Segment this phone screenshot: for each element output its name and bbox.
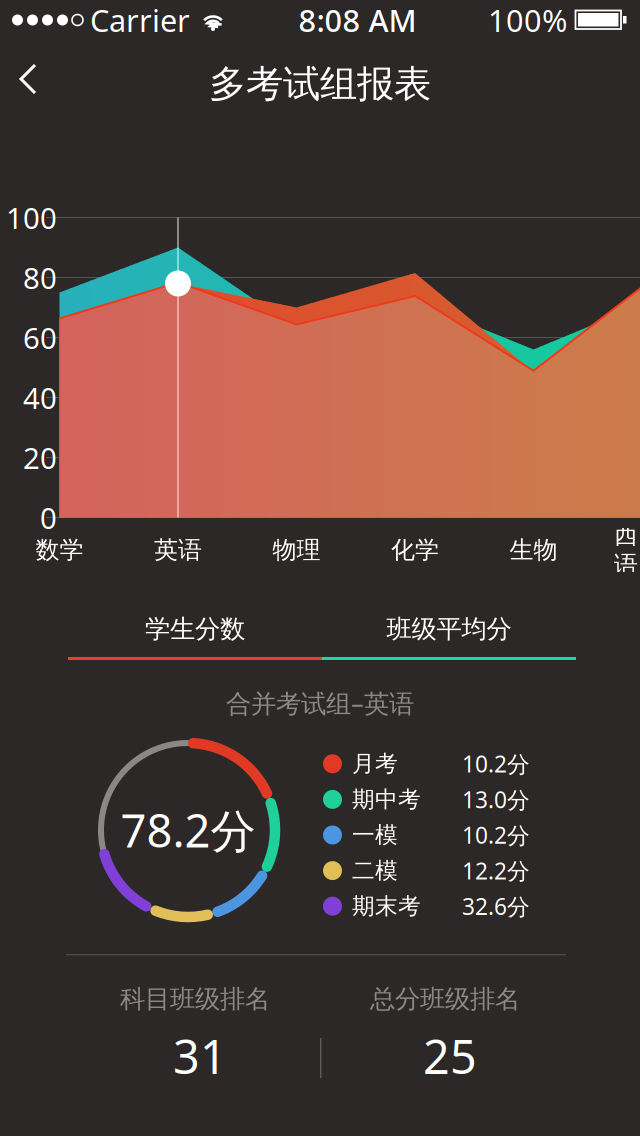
button[interactable]: 总分班级排名 — [320, 966, 570, 1086]
staticText: 物理 — [272, 535, 320, 565]
staticText: 化学 — [391, 535, 439, 565]
staticText: 78.2分 — [120, 800, 255, 860]
staticText: 期末考 — [352, 892, 421, 920]
staticText: 32.6分 — [462, 891, 530, 921]
button[interactable]: 返回 — [8, 53, 60, 105]
staticText: 12.2分 — [462, 855, 530, 886]
staticText: 8:08 AM — [298, 0, 416, 40]
staticText: 班级平均分 — [386, 613, 511, 644]
staticText: 合并考试组–英语 — [226, 686, 414, 720]
staticText: 数学 — [35, 535, 83, 565]
staticText: 二模 — [352, 857, 398, 884]
button[interactable]: 学生分数 — [68, 600, 322, 658]
staticText: 10.2分 — [462, 820, 530, 850]
staticText: 100 — [6, 198, 57, 237]
staticText: 25 — [423, 1025, 477, 1087]
staticText: 月考 — [352, 750, 398, 778]
staticText: 西语 — [614, 520, 638, 579]
staticText: 期中考 — [352, 785, 421, 813]
button[interactable]: 科目班级排名 — [70, 966, 320, 1086]
staticText: 0 — [40, 498, 57, 537]
staticText: 多考试组报表 — [209, 61, 431, 107]
staticText: 学生分数 — [145, 613, 245, 644]
button[interactable]: 班级平均分 — [322, 600, 576, 658]
staticText: 100% — [488, 0, 567, 40]
staticText: 一模 — [352, 821, 398, 849]
staticText: 40 — [23, 378, 57, 417]
staticText: 10.2分 — [462, 749, 530, 779]
staticText: 80 — [23, 258, 57, 297]
staticText: 英语 — [154, 535, 202, 565]
staticText: 31 — [173, 1025, 227, 1087]
staticText: 13.0分 — [462, 784, 530, 814]
staticText: 60 — [23, 318, 57, 357]
staticText: 生物 — [509, 535, 557, 565]
staticText: 总分班级排名 — [370, 983, 520, 1014]
staticText: 科目班级排名 — [120, 983, 270, 1014]
staticText: Carrier — [90, 0, 190, 40]
staticText: 20 — [23, 438, 57, 477]
